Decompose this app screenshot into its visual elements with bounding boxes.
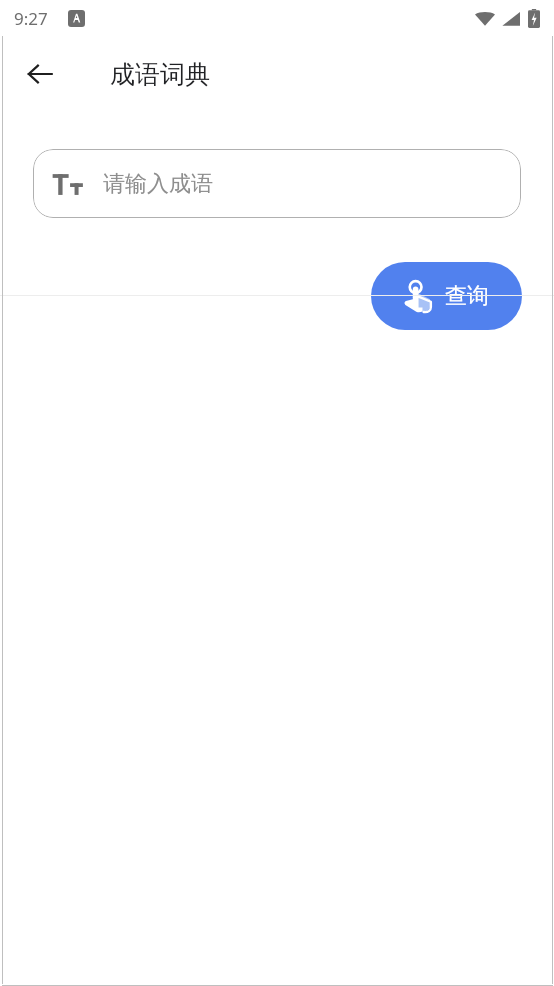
button[interactable]: 请输入成语 — [33, 149, 521, 218]
staticText: 查询 — [445, 282, 489, 310]
button[interactable]: Back — [16, 50, 64, 98]
staticText: 请输入成语 — [103, 170, 213, 198]
staticText: 9:27 — [14, 7, 48, 30]
button[interactable]: 查询 — [371, 262, 522, 330]
staticText: 成语词典 — [110, 59, 210, 90]
